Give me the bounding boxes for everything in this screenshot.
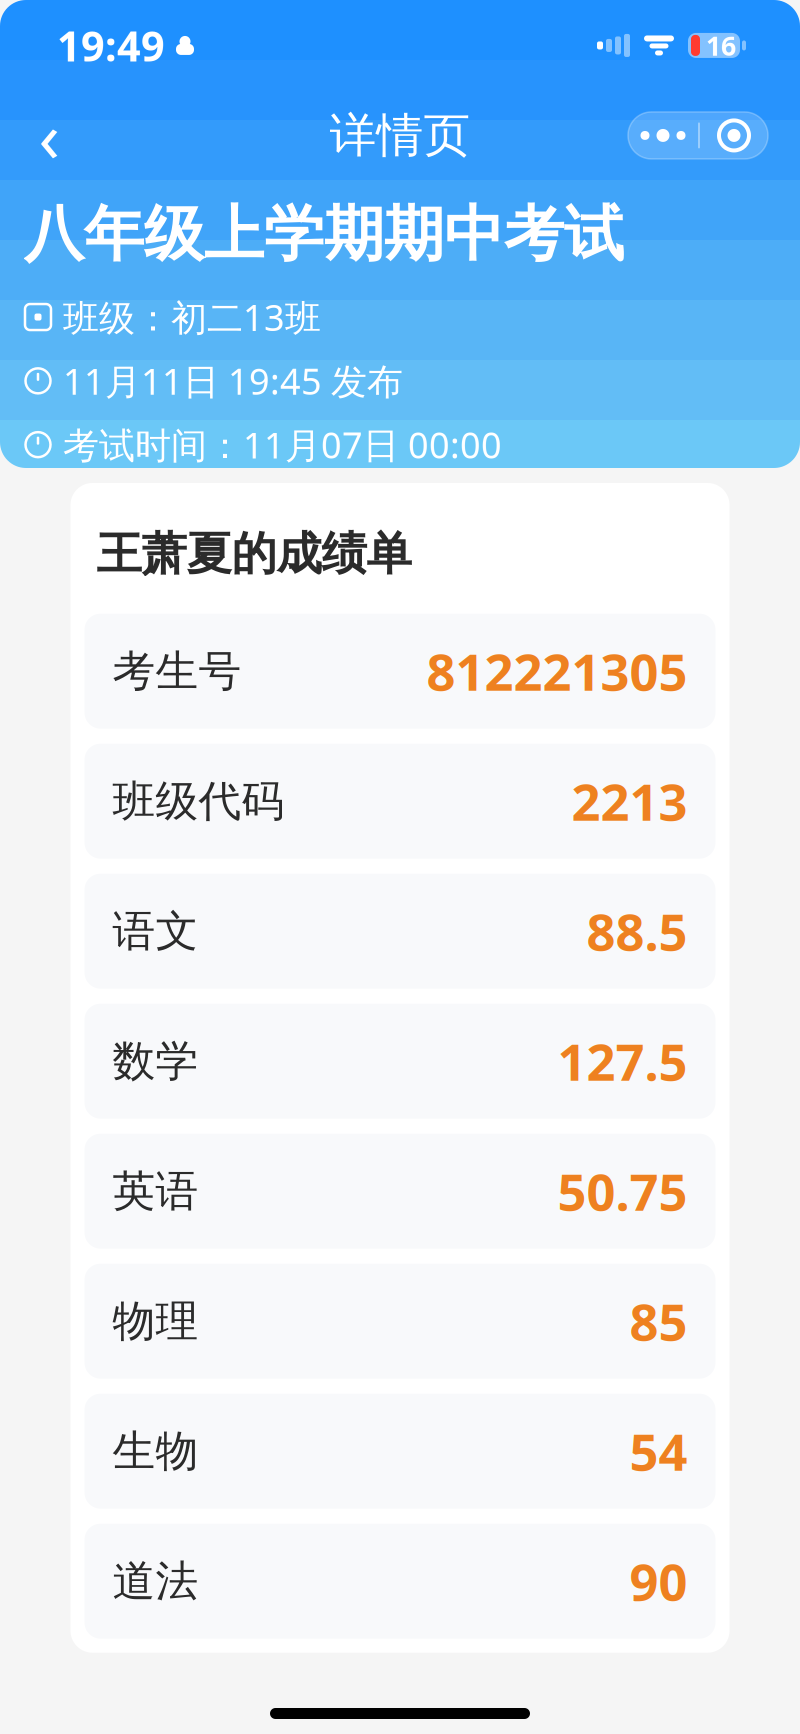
staticText: 班级代码 bbox=[112, 775, 284, 827]
staticText: 11月11日 19:45 发布 bbox=[63, 357, 403, 405]
staticText: 物理 bbox=[112, 1295, 198, 1347]
staticText: 生物 bbox=[112, 1425, 198, 1477]
staticText: 考试时间：11月07日 00:00 bbox=[63, 421, 502, 469]
staticText: 详情页 bbox=[329, 107, 470, 164]
staticText: 王萧夏的成绩单 bbox=[96, 526, 411, 582]
staticText: 19:49 bbox=[57, 18, 165, 73]
staticText: 语文 bbox=[112, 905, 198, 957]
button[interactable]: Back bbox=[14, 100, 84, 170]
button[interactable]: 数学 bbox=[84, 1004, 715, 1119]
button[interactable]: More bbox=[628, 112, 698, 159]
button[interactable]: 语文 bbox=[84, 874, 715, 989]
staticText: 数学 bbox=[112, 1035, 198, 1087]
button[interactable]: 英语 bbox=[84, 1134, 715, 1249]
button[interactable]: 生物 bbox=[84, 1394, 715, 1509]
button[interactable]: Close bbox=[700, 112, 768, 159]
staticText: 英语 bbox=[112, 1165, 198, 1217]
staticText: 88.5 bbox=[586, 897, 687, 965]
staticText: 道法 bbox=[112, 1555, 198, 1607]
button[interactable]: 考生号 bbox=[84, 614, 715, 729]
staticText: 50.75 bbox=[557, 1157, 687, 1225]
staticText: 考生号 bbox=[112, 645, 241, 697]
staticText: ‹ bbox=[38, 89, 59, 181]
button[interactable]: 班级代码 bbox=[84, 744, 715, 859]
staticText: 127.5 bbox=[557, 1027, 687, 1095]
button[interactable]: 道法 bbox=[84, 1524, 715, 1639]
staticText: 2213 bbox=[571, 767, 687, 835]
staticText: 85 bbox=[629, 1287, 687, 1355]
staticText: 八年级上学期期中考试 bbox=[24, 197, 624, 271]
button[interactable]: 物理 bbox=[84, 1264, 715, 1379]
staticText: 90 bbox=[629, 1547, 687, 1615]
staticText: 班级：初二13班 bbox=[63, 293, 321, 341]
staticText: 16 bbox=[706, 28, 736, 63]
staticText: 812221305 bbox=[426, 637, 687, 705]
staticText: 54 bbox=[629, 1417, 687, 1485]
